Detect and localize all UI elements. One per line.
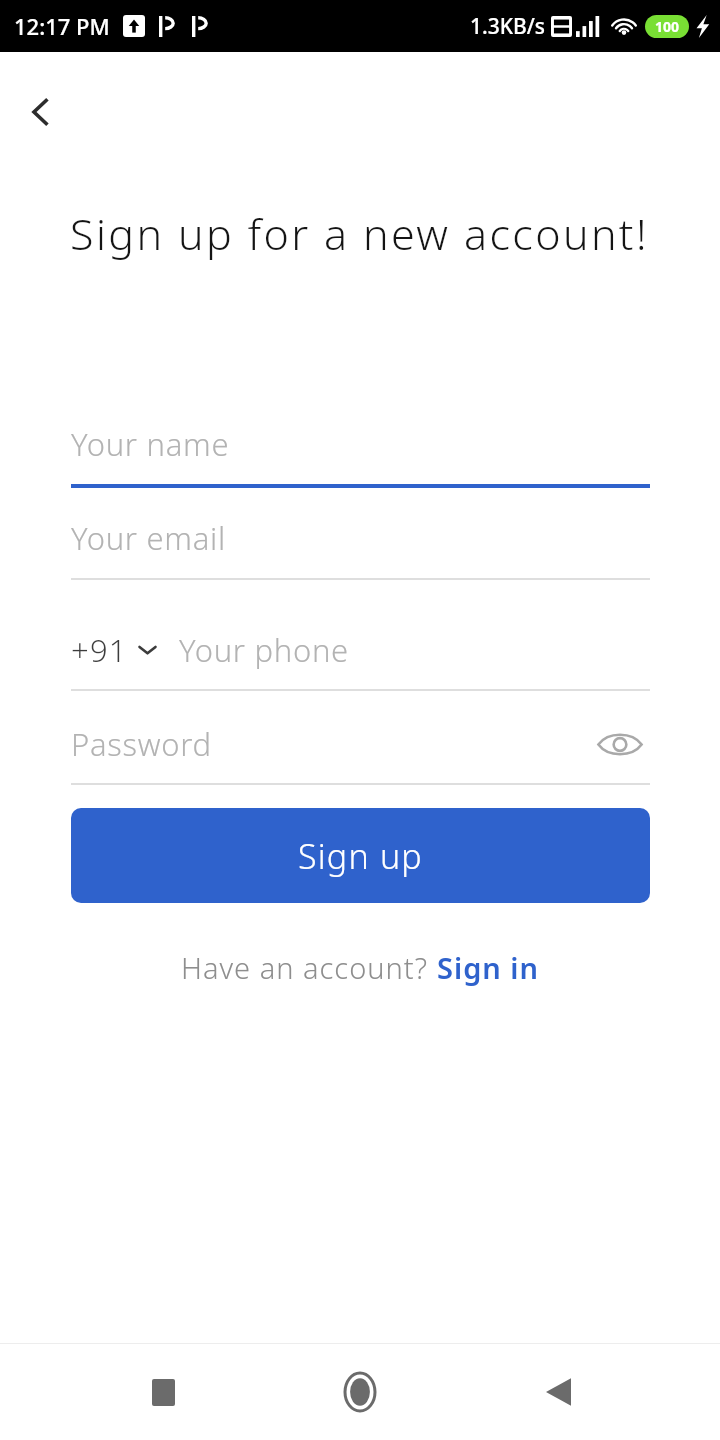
button[interactable]: Sign up bbox=[71, 808, 650, 903]
button[interactable]: Back bbox=[523, 1357, 593, 1427]
button[interactable]: Home bbox=[325, 1357, 395, 1427]
button[interactable]: Recent apps bbox=[128, 1357, 198, 1427]
button[interactable]: Your email bbox=[71, 498, 650, 578]
button[interactable]: Password bbox=[71, 704, 650, 784]
staticText: Your email bbox=[71, 517, 226, 559]
staticText: 12:17 PM bbox=[14, 11, 110, 41]
staticText: Sign in bbox=[437, 948, 540, 987]
staticText: +91 bbox=[71, 629, 128, 671]
button[interactable]: +91 bbox=[71, 610, 650, 690]
staticText: Your name bbox=[71, 423, 230, 465]
button[interactable]: Sign in bbox=[437, 948, 540, 987]
staticText: Sign up bbox=[298, 833, 423, 879]
staticText: 100 bbox=[655, 17, 680, 36]
staticText: Have an account? bbox=[181, 948, 437, 987]
staticText: Your phone bbox=[179, 629, 349, 671]
button[interactable]: Back bbox=[12, 83, 70, 141]
button[interactable]: Show password bbox=[590, 714, 650, 774]
button[interactable]: Your name bbox=[71, 404, 650, 484]
staticText: Password bbox=[71, 723, 212, 765]
staticText: Sign up for a new account! bbox=[70, 204, 649, 263]
staticText: 1.3KB/s bbox=[470, 12, 546, 41]
